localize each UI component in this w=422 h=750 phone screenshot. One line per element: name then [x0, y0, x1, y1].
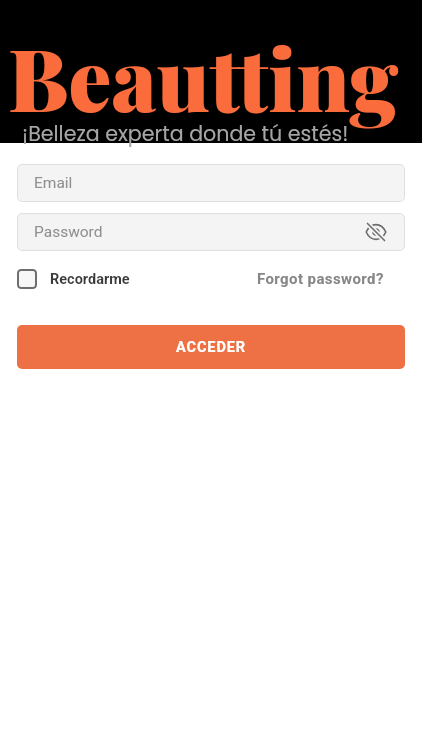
staticText: ¡Belleza experta donde tú estés! — [22, 119, 349, 148]
button[interactable]: Recordarme — [17, 267, 130, 291]
staticText: Beautting — [8, 19, 399, 133]
button[interactable]: Forgot password? — [257, 267, 405, 291]
button[interactable]: ACCEDER — [17, 325, 405, 369]
staticText: Email — [34, 174, 73, 192]
staticText: Recordarme — [50, 271, 130, 288]
staticText: Password — [34, 223, 103, 241]
staticText: Forgot password? — [257, 270, 384, 288]
staticText: ACCEDER — [176, 339, 246, 356]
button[interactable]: Show password — [361, 217, 391, 247]
button[interactable]: Password — [17, 213, 405, 251]
button[interactable]: Email — [17, 164, 405, 202]
